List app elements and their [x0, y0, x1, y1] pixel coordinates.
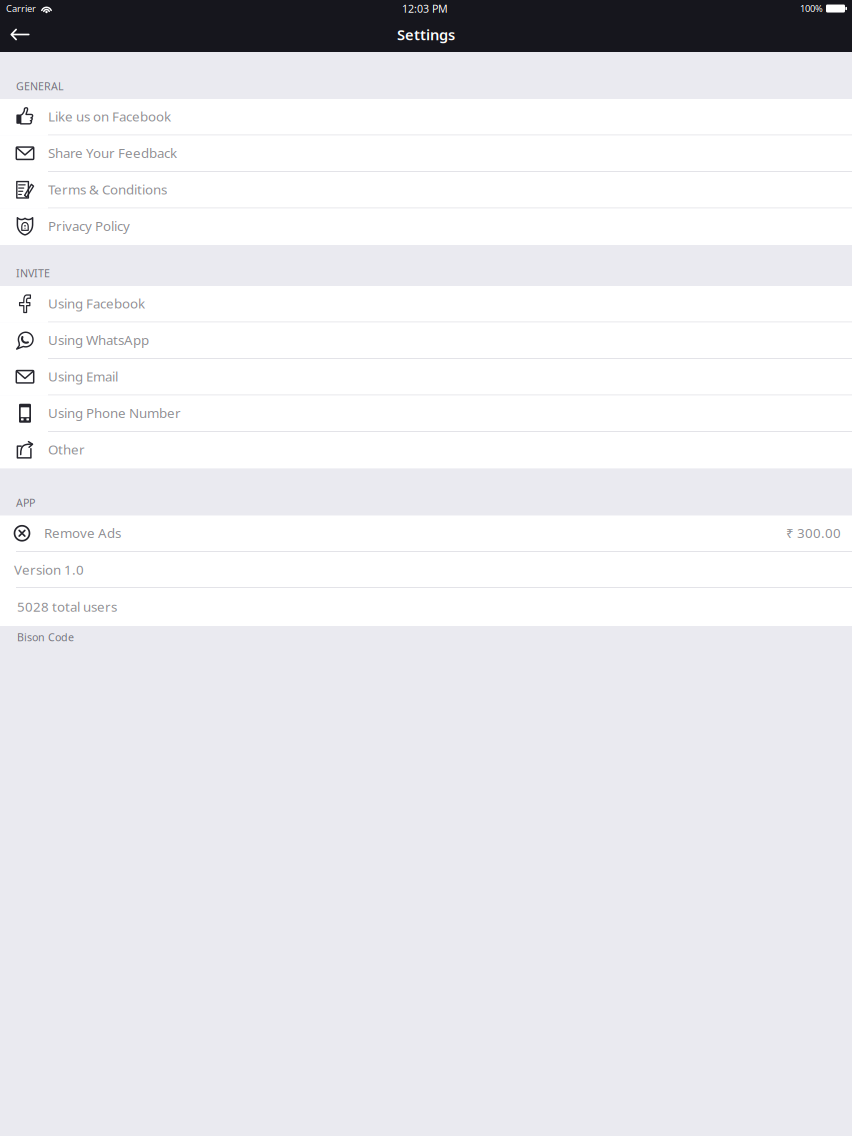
- staticText: APP: [16, 495, 35, 510]
- staticText: Share Your Feedback: [48, 144, 177, 162]
- staticText: Like us on Facebook: [48, 107, 171, 125]
- staticText: Terms & Conditions: [48, 180, 167, 198]
- staticText: Privacy Policy: [48, 217, 130, 235]
- button[interactable]: Using Facebook: [0, 286, 852, 322]
- staticText: Carrier: [6, 2, 36, 15]
- staticText: Using Phone Number: [48, 404, 181, 422]
- staticText: ₹ 300.00: [786, 524, 841, 542]
- button[interactable]: Using WhatsApp: [0, 322, 852, 359]
- staticText: Settings: [397, 25, 455, 44]
- staticText: Remove Ads: [44, 524, 121, 542]
- button[interactable]: Like us on Facebook: [0, 99, 852, 135]
- button[interactable]: Privacy Policy: [0, 208, 852, 245]
- staticText: 5028 total users: [17, 598, 117, 615]
- staticText: Using Facebook: [48, 294, 145, 312]
- staticText: Using WhatsApp: [48, 331, 149, 349]
- staticText: Using Email: [48, 367, 118, 385]
- staticText: Other: [48, 440, 85, 458]
- button[interactable]: Using Email: [0, 359, 852, 395]
- button[interactable]: Other: [0, 432, 852, 468]
- button[interactable]: Back: [0, 17, 40, 52]
- button[interactable]: Using Phone Number: [0, 395, 852, 432]
- staticText: 12:03 PM: [402, 1, 448, 16]
- staticText: INVITE: [16, 266, 50, 280]
- button[interactable]: Remove Ads: [0, 515, 852, 552]
- staticText: GENERAL: [16, 79, 64, 93]
- button[interactable]: Terms & Conditions: [0, 172, 852, 208]
- staticText: 100%: [800, 2, 823, 15]
- staticText: Version 1.0: [14, 561, 84, 578]
- staticText: Bison Code: [17, 630, 74, 644]
- button[interactable]: Share Your Feedback: [0, 135, 852, 172]
